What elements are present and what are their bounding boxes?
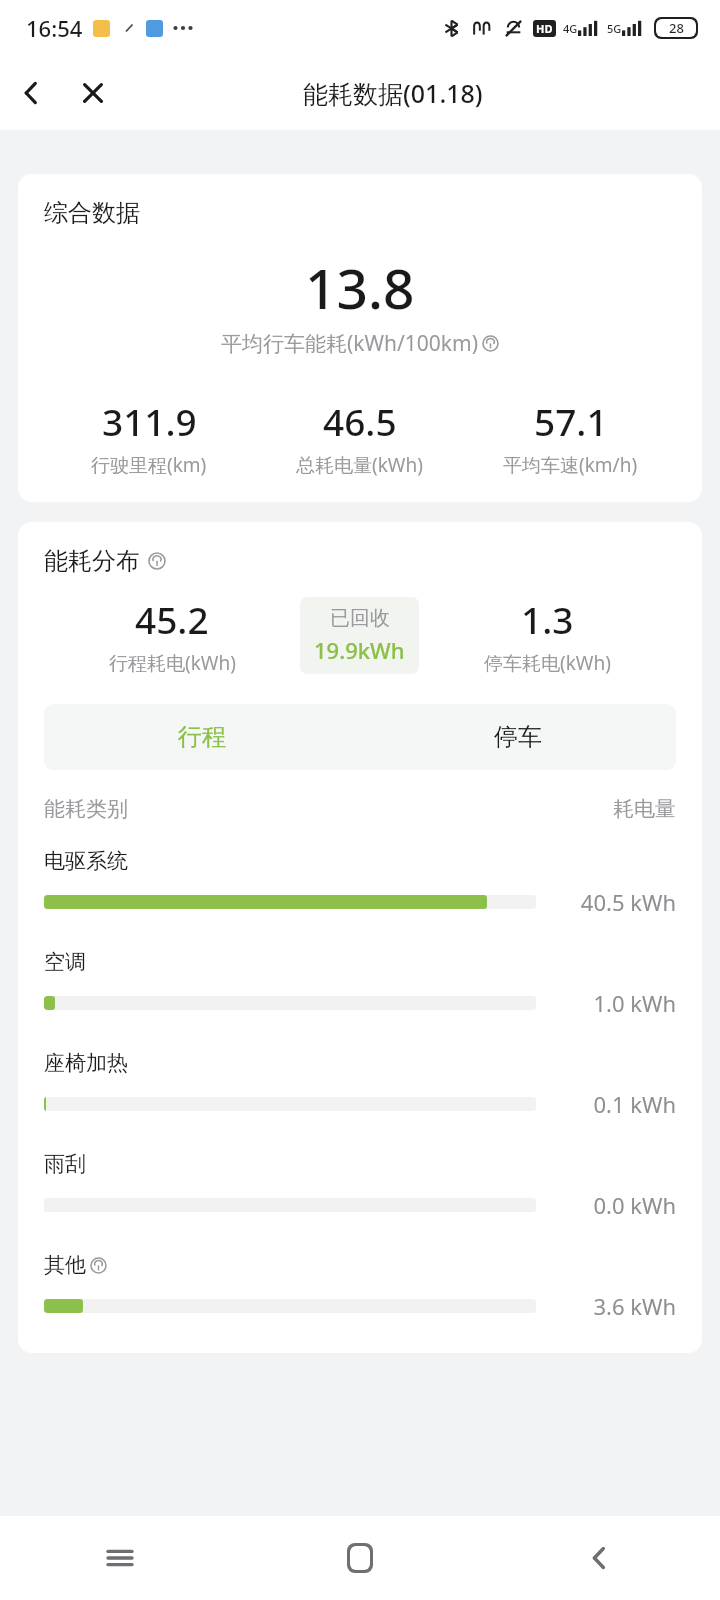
staticText: 空调 — [44, 949, 86, 975]
staticText: 16:54 — [26, 13, 83, 43]
staticText: 停车耗电(kWh) — [484, 650, 611, 676]
staticText: 13.8 — [305, 250, 415, 325]
staticText: 平均车速(km/h) — [503, 452, 638, 478]
staticText: HD — [536, 21, 553, 36]
staticText: 行程 — [178, 722, 226, 752]
staticText: 311.9 — [102, 396, 197, 446]
staticText: 1.3 — [521, 594, 574, 644]
staticText: 平均行车能耗(kWh/100km) — [221, 329, 479, 358]
staticText: 46.5 — [323, 396, 397, 446]
staticText: 行程耗电(kWh) — [109, 650, 236, 676]
staticText: 28 — [669, 19, 684, 37]
staticText: 耗电量 — [613, 796, 676, 822]
button[interactable]: Back — [480, 1516, 720, 1600]
staticText: 总耗电量(kWh) — [296, 452, 423, 478]
staticText: 57.1 — [534, 396, 608, 446]
button[interactable]: Back — [0, 62, 62, 124]
staticText: 其他 — [44, 1252, 86, 1278]
staticText: 能耗类别 — [44, 796, 128, 822]
staticText: 19.9kWh — [314, 635, 405, 665]
staticText: 已回收 — [330, 606, 390, 631]
staticText: 40.5 kWh — [536, 887, 676, 917]
staticText: 4G — [563, 21, 578, 36]
staticText: 能耗数据(01.18) — [303, 76, 483, 110]
staticText: 停车 — [494, 722, 542, 752]
staticText: 行驶里程(km) — [91, 452, 207, 478]
staticText: 能耗分布 — [44, 546, 140, 576]
staticText: 雨刮 — [44, 1151, 86, 1177]
button[interactable]: Recents — [0, 1516, 240, 1600]
button[interactable]: 行程 — [44, 704, 360, 770]
staticText: 座椅加热 — [44, 1050, 128, 1076]
staticText: 1.0 kWh — [536, 988, 676, 1018]
staticText: 3.6 kWh — [536, 1291, 676, 1321]
staticText: 0.1 kWh — [536, 1089, 676, 1119]
button[interactable]: Close — [62, 62, 124, 124]
staticText: 综合数据 — [44, 198, 140, 228]
button[interactable]: 停车 — [360, 704, 676, 770]
staticText: 电驱系统 — [44, 848, 128, 874]
staticText: 0.0 kWh — [536, 1190, 676, 1220]
staticText: 5G — [607, 21, 622, 36]
button[interactable]: Home — [240, 1516, 480, 1600]
staticText: 45.2 — [135, 594, 209, 644]
